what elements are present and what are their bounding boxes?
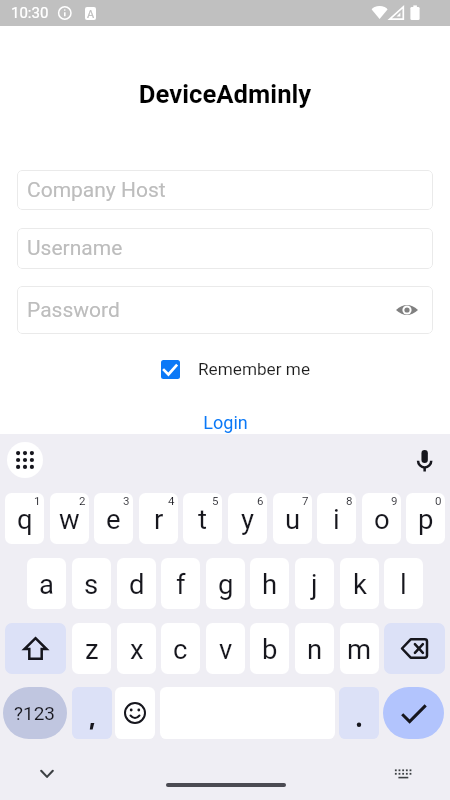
- button[interactable]: r: [139, 493, 178, 544]
- button[interactable]: a: [27, 558, 66, 609]
- button[interactable]: Voice input: [409, 448, 441, 480]
- button[interactable]: f: [161, 558, 200, 609]
- staticText: b: [262, 633, 278, 665]
- staticText: m: [347, 633, 372, 665]
- button[interactable]: n: [295, 623, 334, 674]
- button[interactable]: d: [117, 558, 156, 609]
- staticText: t: [198, 503, 207, 535]
- staticText: 9: [391, 494, 398, 507]
- button[interactable]: Remember me: [161, 359, 311, 379]
- staticText: 4: [168, 494, 175, 507]
- button[interactable]: o: [362, 493, 401, 544]
- staticText: z: [85, 633, 99, 665]
- staticText: 5: [212, 494, 219, 507]
- button[interactable]: y: [228, 493, 267, 544]
- button[interactable]: Switch keyboard: [391, 760, 415, 784]
- button[interactable]: e: [94, 493, 133, 544]
- button[interactable]: l: [384, 558, 423, 609]
- button[interactable]: Hide keyboard: [35, 762, 59, 786]
- button[interactable]: b: [250, 623, 289, 674]
- staticText: 10:30: [11, 4, 49, 22]
- button[interactable]: w: [50, 493, 89, 544]
- staticText: a: [39, 568, 54, 600]
- staticText: e: [106, 503, 121, 535]
- button[interactable]: p: [406, 493, 445, 544]
- button[interactable]: v: [206, 623, 245, 674]
- button[interactable]: i: [317, 493, 356, 544]
- staticText: 8: [346, 494, 353, 507]
- staticText: ?123: [14, 702, 56, 724]
- staticText: Password: [27, 298, 120, 323]
- staticText: h: [262, 568, 278, 600]
- button[interactable]: s: [72, 558, 111, 609]
- staticText: k: [353, 568, 367, 600]
- button[interactable]: ?123: [3, 687, 67, 739]
- staticText: A: [85, 8, 96, 20]
- staticText: i: [333, 503, 340, 535]
- staticText: o: [374, 503, 390, 535]
- button[interactable]: c: [161, 623, 200, 674]
- staticText: 0: [435, 494, 442, 507]
- button[interactable]: Login: [0, 409, 450, 435]
- staticText: w: [59, 503, 80, 535]
- button[interactable]: Company Host: [17, 170, 433, 210]
- button[interactable]: k: [340, 558, 379, 609]
- button[interactable]: Username: [17, 228, 433, 269]
- button[interactable]: g: [206, 558, 245, 609]
- staticText: c: [173, 633, 188, 665]
- button[interactable]: m: [340, 623, 379, 674]
- button[interactable]: Enter: [383, 687, 444, 739]
- button[interactable]: u: [273, 493, 312, 544]
- button[interactable]: x: [117, 623, 156, 674]
- button[interactable]: Backspace: [384, 623, 445, 674]
- button[interactable]: z: [72, 623, 111, 674]
- button[interactable]: Emoji: [115, 687, 155, 739]
- staticText: DeviceAdminly: [0, 79, 450, 109]
- staticText: Remember me: [198, 359, 311, 379]
- staticText: r: [154, 503, 164, 535]
- staticText: u: [285, 503, 301, 535]
- staticText: d: [129, 568, 145, 600]
- staticText: x: [130, 633, 144, 665]
- staticText: s: [84, 568, 99, 600]
- staticText: n: [307, 633, 323, 665]
- button[interactable]: Open apps: [7, 442, 43, 478]
- staticText: f: [176, 568, 186, 600]
- staticText: y: [241, 503, 255, 535]
- button[interactable]: j: [295, 558, 334, 609]
- staticText: g: [218, 568, 234, 600]
- button[interactable]: t: [183, 493, 222, 544]
- staticText: j: [311, 568, 318, 600]
- button[interactable]: q: [5, 493, 44, 544]
- staticText: q: [17, 503, 33, 535]
- staticText: 7: [302, 494, 309, 507]
- staticText: 6: [257, 494, 264, 507]
- staticText: p: [418, 503, 434, 535]
- staticText: Company Host: [27, 178, 166, 203]
- staticText: Username: [27, 236, 123, 261]
- staticText: Login: [203, 412, 248, 433]
- staticText: v: [219, 633, 233, 665]
- button[interactable]: h: [250, 558, 289, 609]
- button[interactable]: Comma: [72, 687, 112, 739]
- button[interactable]: Shift: [5, 623, 66, 674]
- staticText: 2: [79, 494, 86, 507]
- button[interactable]: Password: [17, 286, 433, 334]
- button[interactable]: Period: [339, 687, 379, 739]
- staticText: 3: [123, 494, 130, 507]
- staticText: l: [400, 568, 407, 600]
- staticText: 1: [34, 494, 41, 507]
- button[interactable]: Show password: [395, 298, 419, 322]
